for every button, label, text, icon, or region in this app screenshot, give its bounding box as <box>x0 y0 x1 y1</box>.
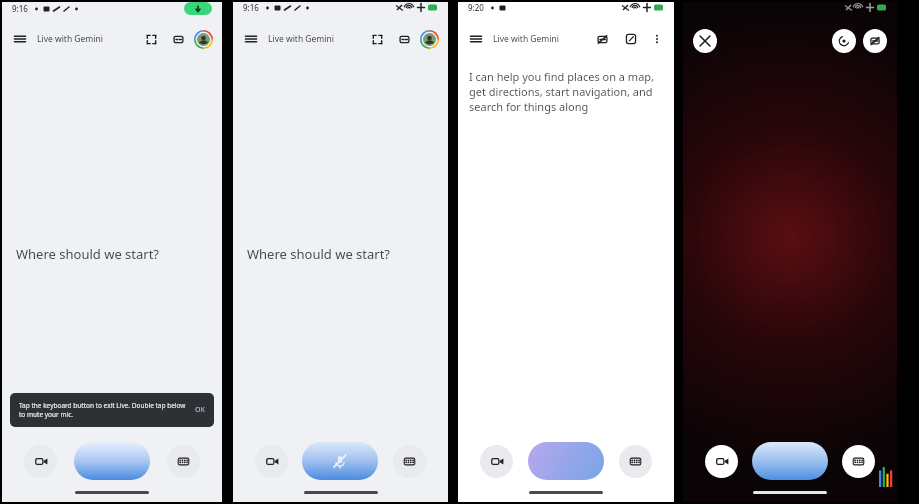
staticText: Where should we start? <box>247 245 391 263</box>
staticText: I can help you find places on a map, get… <box>469 69 663 114</box>
staticText: 9:20 <box>468 2 484 13</box>
button[interactable]: Captions off <box>863 29 887 53</box>
button[interactable]: Camera <box>705 445 738 478</box>
button[interactable]: Microphone <box>752 442 828 480</box>
staticText: Tap the keyboard button to exit Live. Do… <box>19 401 189 419</box>
button[interactable]: Keyboard <box>842 445 875 478</box>
button[interactable]: Scan <box>368 30 386 48</box>
button[interactable]: Close <box>693 29 717 53</box>
button[interactable]: Menu <box>467 30 485 48</box>
button[interactable]: Captions <box>169 30 187 48</box>
button[interactable]: Camera <box>480 445 513 478</box>
staticText: Live with Gemini <box>268 33 334 45</box>
staticText: Live with Gemini <box>493 33 559 45</box>
button[interactable]: Scan <box>142 30 160 48</box>
button[interactable]: Keyboard <box>393 445 426 478</box>
button[interactable]: Keyboard <box>167 445 200 478</box>
button[interactable]: Account <box>194 30 213 49</box>
staticText: Where should we start? <box>16 245 160 263</box>
button[interactable]: Microphone <box>302 442 378 480</box>
button[interactable]: Switch camera <box>832 29 856 53</box>
button[interactable]: New chat <box>622 30 640 48</box>
staticText: 9:16 <box>243 2 259 13</box>
button[interactable]: Captions <box>395 30 413 48</box>
button[interactable]: Captions off <box>593 30 611 48</box>
button[interactable]: Menu <box>11 30 29 48</box>
button[interactable]: Microphone <box>74 442 150 480</box>
button[interactable]: Camera <box>24 445 57 478</box>
button[interactable]: Menu <box>242 30 260 48</box>
staticText: Live with Gemini <box>37 33 103 45</box>
button[interactable]: Microphone <box>528 442 604 480</box>
button[interactable]: Tap the keyboard button to exit Live. Do… <box>10 393 214 427</box>
button[interactable]: Keyboard <box>619 445 652 478</box>
button[interactable]: More options <box>649 31 665 47</box>
staticText: 9:16 <box>12 3 28 14</box>
button[interactable]: Camera <box>255 445 288 478</box>
button[interactable]: OK <box>195 405 205 415</box>
button[interactable]: Account <box>420 30 439 49</box>
